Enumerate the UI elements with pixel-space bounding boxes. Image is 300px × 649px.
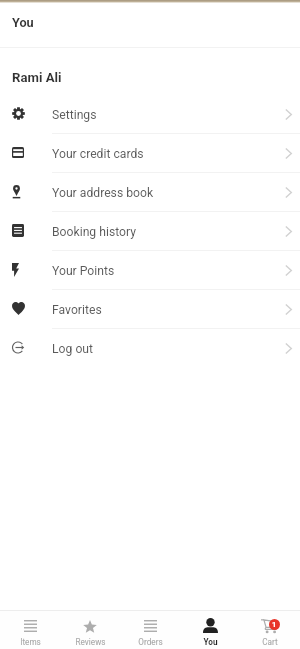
staticText: Your credit cards: [52, 147, 276, 161]
staticText: Booking history: [52, 225, 276, 239]
staticText: 1: [272, 620, 277, 629]
staticText: You: [12, 15, 34, 30]
button[interactable]: You: [180, 611, 240, 649]
button[interactable]: Your address book: [0, 173, 300, 212]
button[interactable]: Items: [0, 611, 60, 649]
staticText: Items: [20, 637, 41, 647]
button[interactable]: Orders: [120, 611, 180, 649]
button[interactable]: Favorites: [0, 290, 300, 329]
staticText: Your address book: [52, 186, 276, 200]
button[interactable]: Cart: [240, 611, 300, 649]
button[interactable]: Your Points: [0, 251, 300, 290]
button[interactable]: Log out: [0, 329, 300, 368]
staticText: Cart: [262, 637, 278, 647]
button[interactable]: Your credit cards: [0, 134, 300, 173]
button[interactable]: Booking history: [0, 212, 300, 251]
staticText: Log out: [52, 342, 276, 356]
staticText: You: [203, 637, 218, 647]
staticText: Your Points: [52, 264, 276, 278]
staticText: Favorites: [52, 303, 276, 317]
staticText: Settings: [52, 108, 276, 122]
staticText: Orders: [138, 637, 163, 647]
staticText: Rami Ali: [12, 70, 62, 85]
staticText: Reviews: [75, 637, 106, 647]
button[interactable]: Settings: [0, 95, 300, 134]
button[interactable]: Reviews: [60, 611, 120, 649]
